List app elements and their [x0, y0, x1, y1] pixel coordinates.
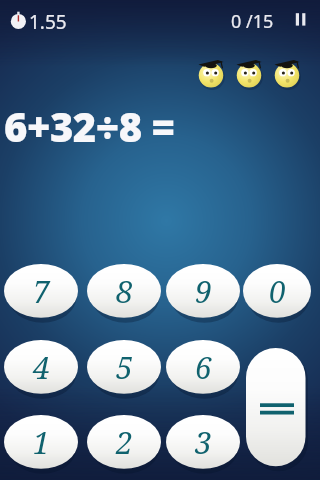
- button[interactable]: Timer 1.55: [8, 9, 96, 33]
- staticText: 0 /15: [231, 9, 274, 34]
- other: Life 2: [232, 53, 266, 89]
- button[interactable]: 9: [166, 264, 240, 320]
- other: Life 3: [270, 53, 304, 89]
- button[interactable]: 7: [4, 264, 78, 320]
- staticText: 9: [195, 271, 212, 312]
- staticText: 3: [195, 422, 212, 463]
- button[interactable]: 8: [87, 264, 161, 320]
- button[interactable]: 1: [4, 415, 78, 471]
- button[interactable]: Pause: [291, 10, 311, 30]
- button[interactable]: Equals: [246, 348, 308, 470]
- button[interactable]: 3: [166, 415, 240, 471]
- staticText: 4: [33, 347, 50, 388]
- button[interactable]: 0: [243, 264, 311, 320]
- staticText: 2: [116, 422, 133, 463]
- staticText: 6: [195, 347, 212, 388]
- button[interactable]: 2: [87, 415, 161, 471]
- other: Life 1: [194, 53, 228, 89]
- staticText: 5: [116, 347, 133, 388]
- staticText: 6+32÷8 =: [4, 99, 175, 153]
- staticText: 0: [269, 271, 286, 312]
- button[interactable]: 5: [87, 340, 161, 396]
- staticText: 1.55: [29, 9, 67, 33]
- button[interactable]: 4: [4, 340, 78, 396]
- staticText: 8: [116, 271, 133, 312]
- button[interactable]: 6: [166, 340, 240, 396]
- staticText: 7: [33, 271, 50, 312]
- staticText: 1: [33, 422, 50, 463]
